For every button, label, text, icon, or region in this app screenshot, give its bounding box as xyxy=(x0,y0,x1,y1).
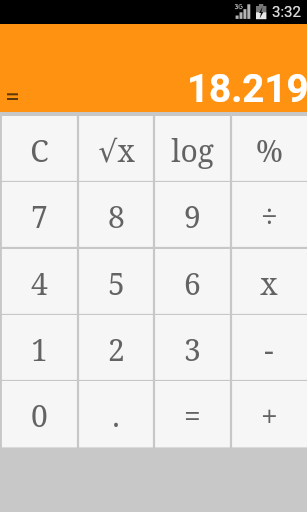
button[interactable]: 3 xyxy=(154,315,231,381)
button[interactable]: - xyxy=(231,315,307,381)
button[interactable]: 7 xyxy=(0,182,78,248)
staticText: 4 xyxy=(31,263,48,304)
staticText: 6 xyxy=(184,263,201,304)
button[interactable]: % xyxy=(231,116,307,182)
other: 3G signal strength xyxy=(234,3,252,20)
staticText: % xyxy=(256,130,283,171)
button[interactable]: 4 xyxy=(0,249,78,315)
button[interactable]: √x xyxy=(78,116,154,182)
staticText: x xyxy=(260,263,278,304)
staticText: log xyxy=(171,130,214,171)
button[interactable]: 5 xyxy=(78,249,154,315)
staticText: 3:32 xyxy=(272,3,301,21)
button[interactable]: C xyxy=(0,116,78,182)
staticText: 5 xyxy=(108,263,125,304)
staticText: 2 xyxy=(108,329,125,370)
staticText: 1 xyxy=(31,329,48,370)
button[interactable]: Calculator display xyxy=(0,24,307,112)
button[interactable]: + xyxy=(231,381,307,447)
button[interactable]: 8 xyxy=(78,182,154,248)
button[interactable]: 0 xyxy=(0,381,78,447)
button[interactable]: . xyxy=(78,381,154,447)
staticText: . xyxy=(112,395,120,436)
staticText: = xyxy=(184,395,201,436)
button[interactable]: log xyxy=(154,116,231,182)
staticText: ÷ xyxy=(261,196,278,237)
staticText: 0 xyxy=(31,395,48,436)
button[interactable]: = xyxy=(154,381,231,447)
staticText: 3 xyxy=(184,329,201,370)
staticText: C xyxy=(30,130,49,171)
staticText: 8 xyxy=(108,196,125,237)
other: Battery charging xyxy=(255,3,268,21)
staticText: 18.219 xyxy=(187,66,307,111)
button[interactable]: ÷ xyxy=(231,182,307,248)
button[interactable]: 1 xyxy=(0,315,78,381)
button[interactable]: x xyxy=(231,249,307,315)
staticText: - xyxy=(264,329,274,370)
button[interactable]: 2 xyxy=(78,315,154,381)
staticText: 7 xyxy=(31,196,48,237)
staticText: + xyxy=(261,395,278,436)
button[interactable]: 9 xyxy=(154,182,231,248)
staticText: √x xyxy=(98,130,135,171)
staticText: 9 xyxy=(184,196,201,237)
button[interactable]: 6 xyxy=(154,249,231,315)
